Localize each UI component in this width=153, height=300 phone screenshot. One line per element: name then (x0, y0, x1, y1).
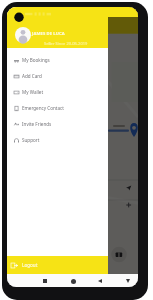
button[interactable]: Back (94, 275, 106, 287)
button[interactable]: Support (7, 132, 108, 148)
staticText: Add Card (22, 73, 42, 79)
button[interactable]: My Wallet (7, 84, 108, 100)
staticText: JAMES DE LUCA (32, 31, 65, 37)
button[interactable]: Add Card (7, 68, 108, 84)
staticText: My Wallet (22, 89, 44, 95)
staticText: My Bookings (22, 57, 50, 63)
staticText: Logout (22, 262, 38, 268)
button[interactable]: Emergency Contact (7, 100, 108, 116)
button[interactable]: My Bookings (7, 52, 108, 68)
button[interactable]: Logout (7, 256, 108, 274)
button[interactable]: Home (67, 275, 79, 287)
button[interactable]: Invite Friends (7, 116, 108, 132)
staticText: Support (22, 137, 40, 143)
staticText: Invite Friends (22, 121, 52, 127)
staticText: Emergency Contact (22, 105, 64, 111)
button[interactable]: Recents (39, 275, 51, 287)
button[interactable]: Assistant (122, 275, 134, 287)
staticText: Seller Since 20-05-2019 (44, 41, 88, 46)
